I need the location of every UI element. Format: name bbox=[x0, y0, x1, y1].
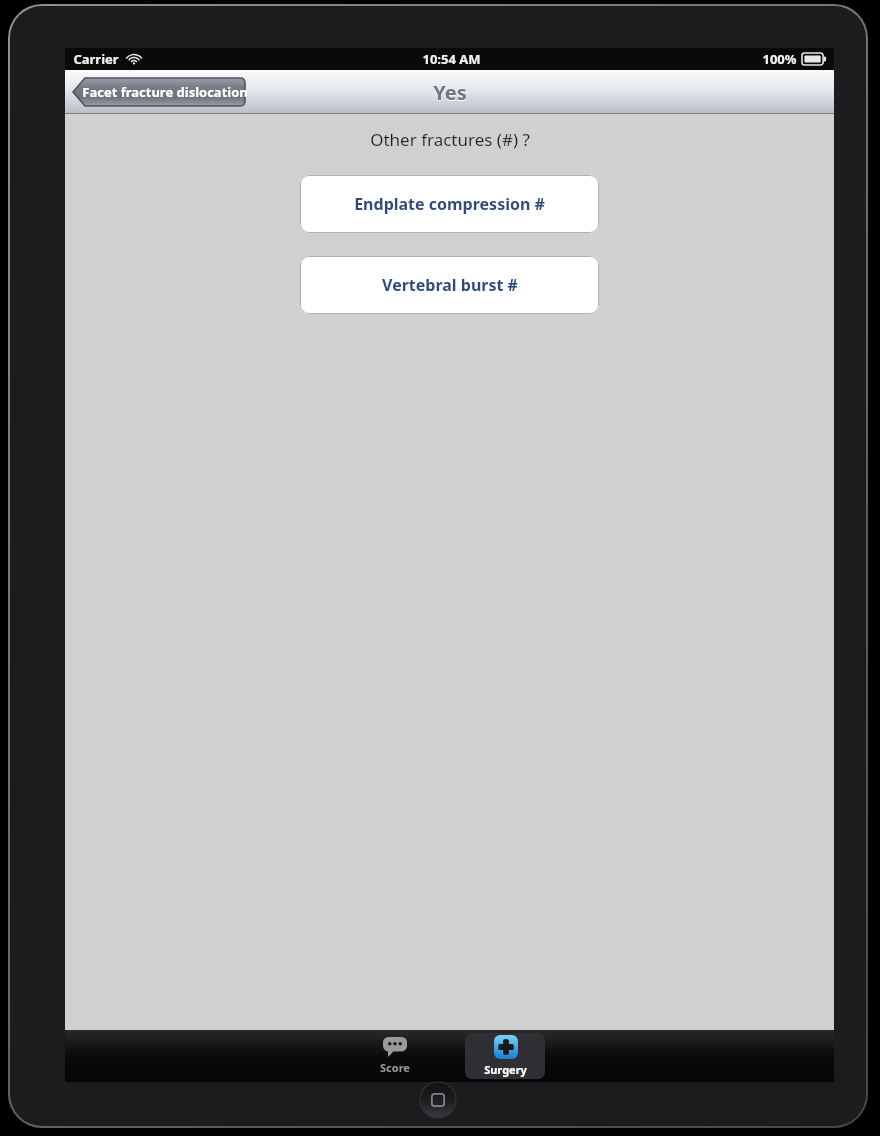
staticText: Other fractures (#) ? bbox=[370, 128, 530, 151]
staticText: 10:54 AM bbox=[422, 50, 481, 68]
staticText: Carrier bbox=[73, 50, 119, 68]
other: Score bbox=[383, 1037, 407, 1057]
staticText: Yes bbox=[433, 80, 467, 107]
button[interactable]: Home bbox=[420, 1082, 456, 1118]
other: Surgery bbox=[494, 1035, 518, 1059]
staticText: Surgery bbox=[484, 1062, 527, 1077]
staticText: Yes bbox=[433, 79, 467, 106]
staticText: Score bbox=[380, 1060, 410, 1075]
staticText: Facet fracture dislocation bbox=[82, 83, 248, 101]
staticText: 100% bbox=[762, 50, 797, 68]
button[interactable]: Score bbox=[355, 1033, 435, 1079]
staticText: Vertebral burst # bbox=[382, 274, 518, 296]
button[interactable]: Facet fracture dislocation bbox=[73, 77, 245, 107]
button[interactable]: Vertebral burst # bbox=[300, 256, 599, 314]
staticText: Endplate compression # bbox=[354, 193, 545, 215]
button[interactable]: Surgery bbox=[465, 1033, 545, 1079]
button[interactable]: Endplate compression # bbox=[300, 175, 599, 233]
